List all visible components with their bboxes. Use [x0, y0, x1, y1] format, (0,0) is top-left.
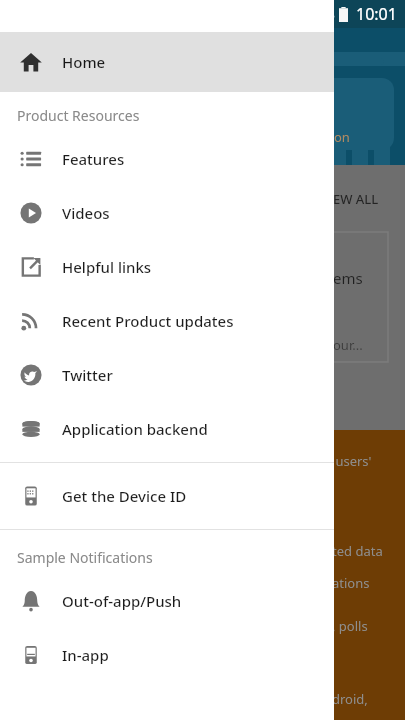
staticText: Application backend	[62, 419, 208, 439]
staticText: , polls	[332, 617, 368, 635]
button[interactable]: In-app	[0, 628, 334, 682]
staticText: Recent Product updates	[62, 311, 234, 331]
staticText: Twitter	[62, 365, 113, 385]
staticText: droid,	[332, 690, 368, 708]
staticText: Videos	[62, 203, 110, 223]
button[interactable]: Twitter	[0, 348, 334, 402]
staticText: Helpful links	[62, 257, 152, 277]
button[interactable]: Features	[0, 132, 334, 186]
button[interactable]: Recent Product updates	[0, 294, 334, 348]
staticText: Product Resources	[17, 106, 140, 125]
staticText: our...	[333, 336, 363, 354]
staticText: Sample Notifications	[17, 548, 153, 567]
staticText: Out-of-app/Push	[62, 591, 182, 611]
staticText: users'	[332, 452, 372, 470]
staticText: ted data	[332, 542, 383, 560]
staticText: 10:01	[356, 3, 397, 25]
staticText: EW ALL	[333, 190, 379, 208]
staticText: Features	[62, 149, 125, 169]
staticText: In-app	[62, 645, 109, 665]
button[interactable]: Home	[0, 32, 334, 92]
staticText: ems	[333, 268, 363, 288]
staticText: Home	[62, 52, 106, 72]
button[interactable]: Videos	[0, 186, 334, 240]
button[interactable]: Out-of-app/Push	[0, 574, 334, 628]
button[interactable]: Get the Device ID	[0, 469, 334, 523]
staticText: on	[334, 128, 350, 146]
staticText: ations	[332, 574, 370, 592]
staticText: 92%	[313, 7, 335, 22]
button[interactable]: Helpful links	[0, 240, 334, 294]
staticText: Get the Device ID	[62, 486, 187, 506]
button[interactable]: Application backend	[0, 402, 334, 456]
